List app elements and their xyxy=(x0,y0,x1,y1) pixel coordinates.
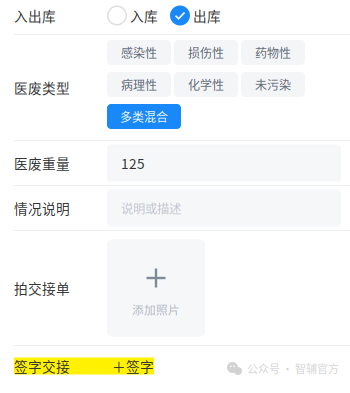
button[interactable]: 多类混合 xyxy=(107,104,181,129)
staticText: 医废类型 xyxy=(14,78,70,97)
staticText: 入库 xyxy=(130,6,158,25)
staticText: 多类混合 xyxy=(120,108,168,125)
button[interactable]: 添加照片 xyxy=(107,239,205,337)
staticText: 未污染 xyxy=(255,76,291,93)
button[interactable]: 125 xyxy=(107,144,341,181)
button[interactable]: 签字交接 xyxy=(14,357,154,374)
button[interactable]: 病理性 xyxy=(107,72,171,97)
staticText: 签字交接 xyxy=(14,356,70,376)
staticText: 入出库 xyxy=(14,6,56,25)
staticText: 拍交接单 xyxy=(14,278,70,298)
staticText: 感染性 xyxy=(121,44,157,61)
button[interactable]: 说明或描述 xyxy=(107,189,341,226)
button[interactable]: 药物性 xyxy=(241,40,305,65)
button[interactable]: 感染性 xyxy=(107,40,171,65)
staticText: 医废重量 xyxy=(14,153,70,173)
button[interactable]: 化学性 xyxy=(174,72,238,97)
staticText: 化学性 xyxy=(188,76,224,93)
button[interactable]: 未污染 xyxy=(241,72,305,97)
staticText: 125 xyxy=(121,153,145,173)
staticText: 病理性 xyxy=(121,76,157,93)
button[interactable]: 出库 xyxy=(170,0,236,31)
staticText: 出库 xyxy=(193,6,221,25)
staticText: 药物性 xyxy=(255,44,291,61)
staticText: ＋签字 xyxy=(112,356,154,376)
staticText: 情况说明 xyxy=(14,198,70,218)
staticText: 损伤性 xyxy=(188,44,224,61)
staticText: 说明或描述 xyxy=(121,199,181,217)
staticText: 公众号 · 智辅官方 xyxy=(247,360,339,376)
button[interactable]: 入库 xyxy=(107,0,170,31)
staticText: 添加照片 xyxy=(132,301,180,318)
button[interactable]: 损伤性 xyxy=(174,40,238,65)
